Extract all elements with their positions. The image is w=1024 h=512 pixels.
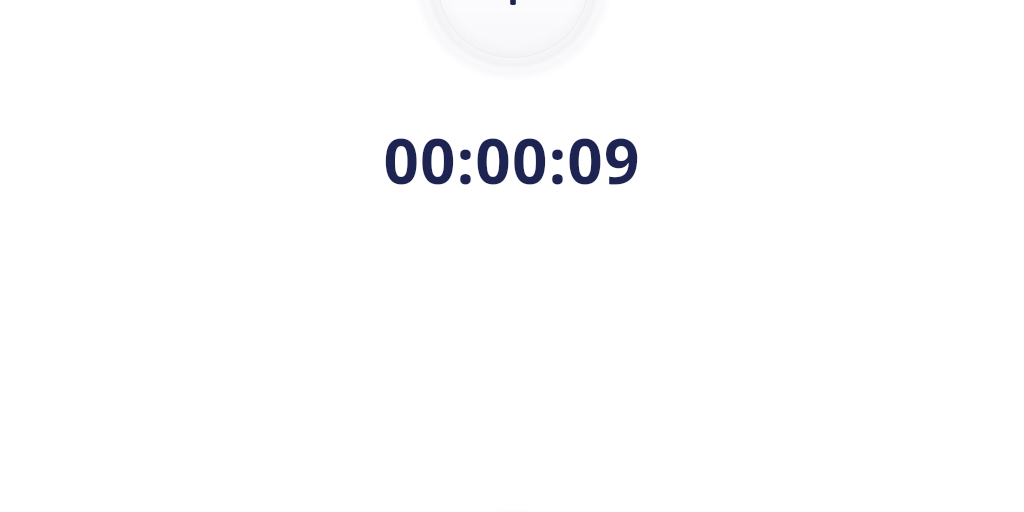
button[interactable]: Filter <box>413 0 613 82</box>
staticText: 00:00:09 <box>383 118 641 202</box>
